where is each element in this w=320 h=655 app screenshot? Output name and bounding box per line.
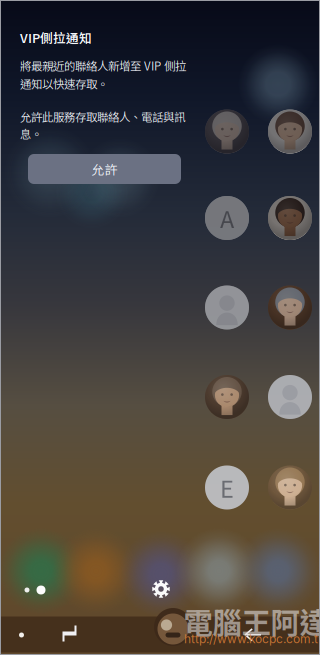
button[interactable]: Contact	[268, 375, 312, 419]
button[interactable]: Contact	[205, 109, 249, 153]
button[interactable]: Contact	[268, 109, 312, 153]
button[interactable]: Contact	[205, 196, 249, 240]
staticText: 電腦王阿達	[183, 600, 320, 642]
button[interactable]: Home	[48, 616, 92, 652]
staticText: VIP側拉通知	[20, 28, 92, 47]
staticText: A	[220, 201, 234, 235]
staticText: 允許	[91, 160, 117, 178]
button[interactable]: Contact	[205, 465, 249, 509]
button[interactable]: Contact	[268, 196, 312, 240]
staticText: E	[220, 470, 234, 504]
staticText: 允許此服務存取聯絡人、電話與訊	[20, 108, 185, 125]
staticText: http://www.kocpc.com.tw	[184, 632, 320, 646]
button[interactable]: Contact	[268, 285, 312, 329]
button[interactable]: Contact	[205, 285, 249, 329]
staticText: 通知以快速存取。	[20, 75, 108, 92]
button[interactable]: Edge panel settings	[144, 572, 178, 606]
button[interactable]: Contact	[205, 375, 249, 419]
button[interactable]: Recent apps	[0, 617, 43, 653]
staticText: 將最親近的聯絡人新增至 VIP 側拉	[20, 57, 186, 74]
button[interactable]: Back	[231, 617, 275, 653]
button[interactable]: 允許	[28, 154, 181, 184]
staticText: 息。	[20, 125, 42, 142]
button[interactable]: Contact	[268, 465, 312, 509]
